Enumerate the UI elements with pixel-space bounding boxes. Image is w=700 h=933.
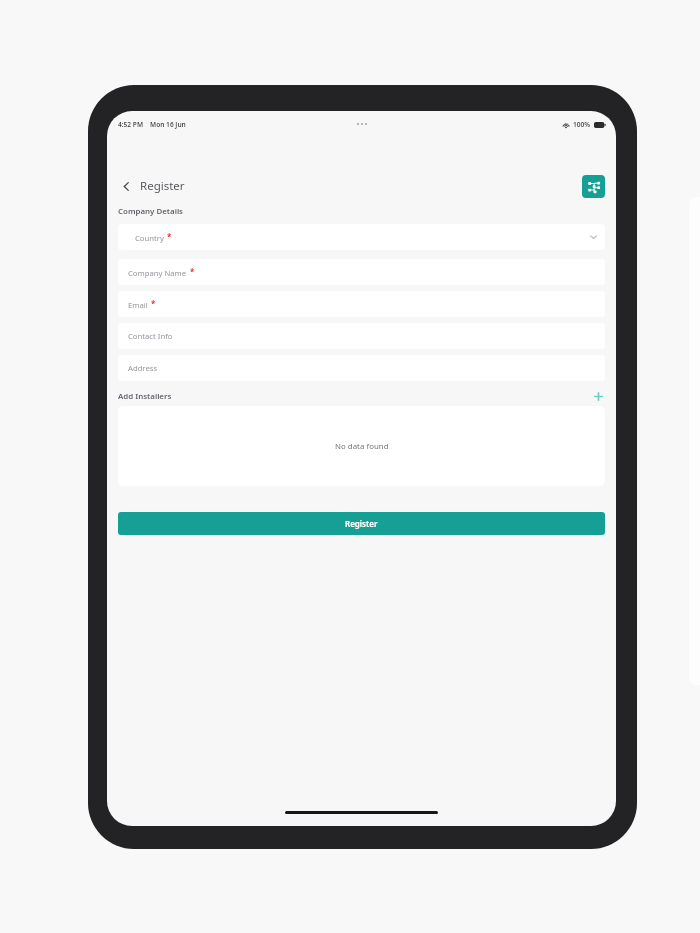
button[interactable]: Email (118, 291, 605, 317)
button[interactable]: Address (118, 355, 605, 381)
staticText: * (167, 231, 172, 242)
staticText: * (190, 266, 195, 277)
button[interactable]: Company Name (118, 259, 605, 285)
staticText: Add Installers (118, 391, 172, 402)
staticText: Contact Info (128, 331, 173, 341)
button[interactable]: Back (116, 176, 185, 196)
button[interactable]: Register (118, 512, 605, 535)
staticText: No data found (335, 441, 389, 452)
staticText: Company Details (118, 206, 184, 217)
staticText: 4:52 PM (118, 120, 144, 129)
button[interactable]: Contact Info (118, 323, 605, 349)
other: Back (116, 176, 136, 196)
staticText: * (151, 298, 156, 309)
staticText: Address (128, 363, 158, 373)
staticText: Register (345, 518, 378, 529)
staticText: Register (140, 178, 185, 194)
staticText: Country (135, 233, 164, 243)
staticText: Mon 16 Jun (150, 120, 186, 129)
button[interactable]: Country (118, 224, 605, 250)
button[interactable]: Add installer (591, 389, 605, 403)
staticText: Company Name (128, 268, 187, 278)
staticText: 100% (573, 120, 591, 129)
staticText: Email (128, 300, 148, 310)
button[interactable]: Organisation chart (582, 175, 605, 198)
